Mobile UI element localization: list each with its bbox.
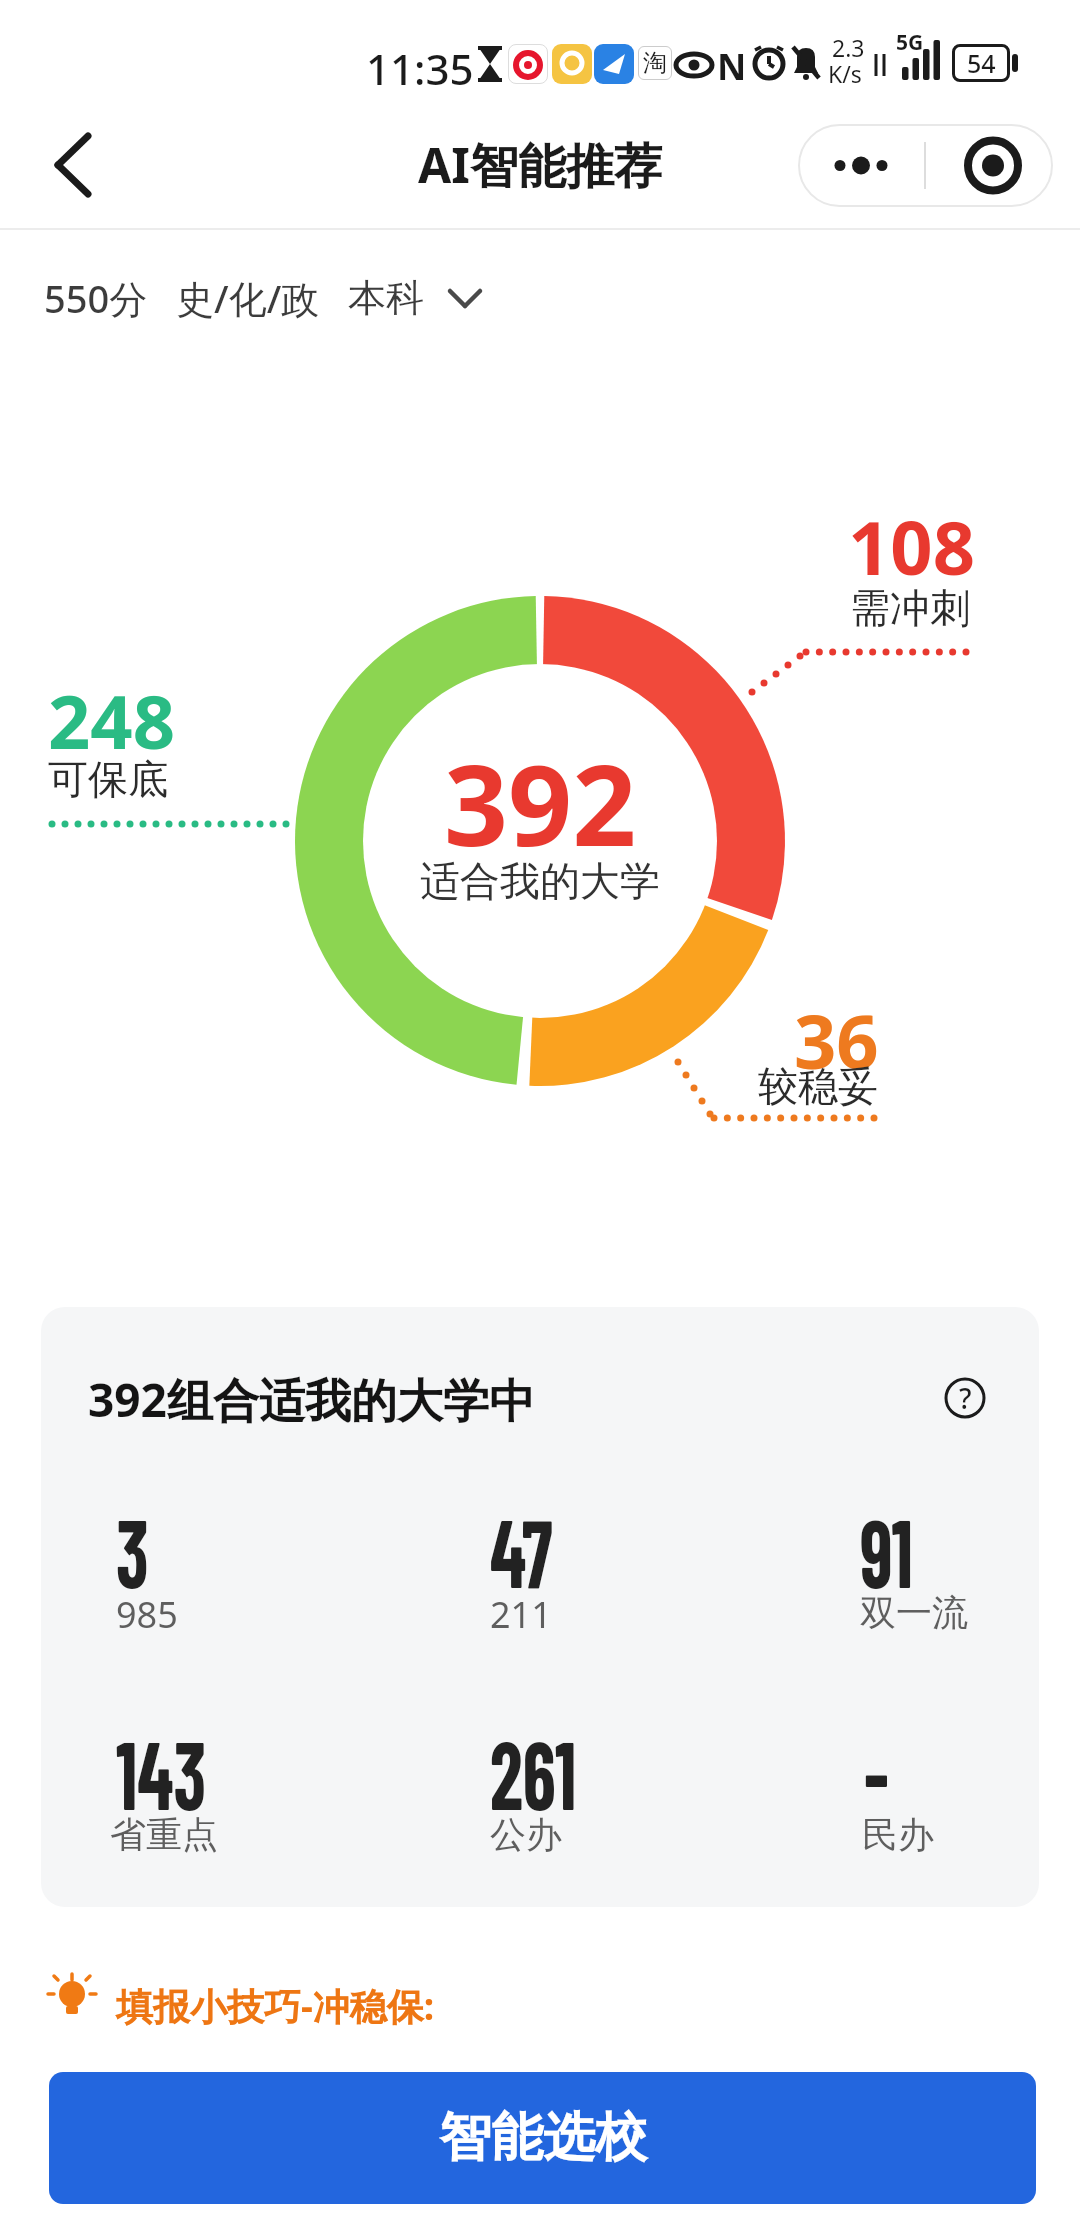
- button[interactable]: 550分: [44, 272, 482, 324]
- staticText: 公办: [490, 1812, 562, 1857]
- staticText: 需冲刺: [850, 583, 970, 633]
- button[interactable]: [798, 124, 925, 207]
- staticText: 淘: [643, 48, 667, 78]
- staticText: ?: [959, 1379, 972, 1417]
- staticText: 史/化/政: [176, 272, 320, 324]
- staticText: 11:35: [366, 40, 474, 97]
- button[interactable]: [30, 120, 120, 210]
- staticText: K/s: [828, 58, 862, 89]
- button[interactable]: [925, 124, 1053, 207]
- staticText: 36: [794, 990, 879, 1091]
- staticText: 211: [490, 1590, 552, 1639]
- staticText: N: [717, 42, 747, 84]
- staticText: 550分: [44, 272, 148, 324]
- staticText: 较稳妥: [758, 1061, 878, 1111]
- button[interactable]: 智能选校: [49, 2072, 1036, 2204]
- staticText: 392: [444, 726, 637, 856]
- staticText: 392组合适我的大学中: [88, 1368, 535, 1431]
- staticText: -: [864, 1714, 889, 1829]
- staticText: 智能选校: [439, 2105, 647, 2171]
- staticText: 143: [116, 1714, 206, 1829]
- staticText: 2.3: [832, 32, 865, 63]
- staticText: 可保底: [48, 754, 168, 804]
- staticText: 261: [490, 1714, 577, 1829]
- staticText: 54: [967, 46, 996, 80]
- staticText: 248: [48, 670, 175, 771]
- staticText: 91: [860, 1492, 913, 1607]
- staticText: 民办: [862, 1812, 934, 1857]
- staticText: 108: [848, 496, 975, 597]
- staticText: 47: [490, 1492, 553, 1607]
- staticText: AI智能推荐: [418, 132, 662, 198]
- staticText: 适合我的大学: [420, 856, 660, 906]
- staticText: 5G: [896, 28, 924, 57]
- staticText: 3: [116, 1492, 149, 1607]
- staticText: 省重点: [110, 1812, 218, 1857]
- staticText: 本科: [348, 274, 424, 322]
- staticText: 双一流: [860, 1590, 968, 1635]
- staticText: 填报小技巧-冲稳保:: [116, 1980, 435, 2031]
- button[interactable]: ?: [944, 1377, 986, 1419]
- staticText: 985: [116, 1590, 178, 1639]
